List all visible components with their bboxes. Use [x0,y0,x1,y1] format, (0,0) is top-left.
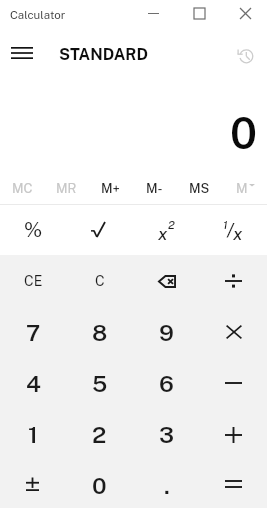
staticText: CE [24,273,43,289]
button[interactable]: 5 [66,358,133,409]
staticText: MS [189,181,210,196]
button[interactable]: C [66,255,133,307]
staticText: M- [146,181,163,196]
staticText: 5 [92,370,108,397]
staticText: % [24,218,43,242]
staticText: 0 [92,472,107,499]
button[interactable]: History [227,38,264,74]
staticText: 0 [230,108,258,159]
button[interactable]: 6 [133,358,200,409]
staticText: 6 [159,370,174,397]
staticText: Calculator [10,8,66,22]
button[interactable]: Squared [133,205,200,255]
staticText: STANDARD [59,45,148,64]
staticText: . [164,472,170,499]
button[interactable]: 0 [66,460,133,508]
button[interactable]: CE [0,255,66,307]
staticText: 2 [92,421,107,448]
button[interactable]: . [133,460,200,508]
button[interactable]: MR [44,174,88,202]
button[interactable]: 8 [66,307,133,358]
button[interactable]: Minus [200,358,267,409]
button[interactable]: 3 [133,409,200,460]
staticText: 1 [223,218,228,232]
button[interactable]: Multiply [200,307,267,358]
staticText: 2 [168,218,175,232]
button[interactable]: Backspace [133,255,200,307]
button[interactable]: 9 [133,307,200,358]
button[interactable]: Reciprocal [200,205,267,255]
button[interactable]: 2 [66,409,133,460]
staticText: M+ [101,181,120,196]
button[interactable]: Minimize [130,0,176,27]
staticText: MR [56,181,77,196]
button[interactable]: M- [132,174,177,202]
button[interactable]: 7 [0,307,66,358]
button[interactable]: Equals [200,460,267,508]
staticText: M [236,181,248,196]
button[interactable]: MS [177,174,222,202]
staticText: 7 [26,319,41,346]
staticText: / [227,219,234,241]
button[interactable]: Open Navigation [3,36,40,72]
staticText: 3 [159,421,175,448]
button[interactable]: STANDARD [53,38,153,70]
button[interactable]: Maximize [176,0,222,27]
button[interactable]: 1 [0,409,66,460]
button[interactable]: Divide [200,255,267,307]
staticText: x [158,224,168,244]
staticText: 8 [92,319,108,346]
button[interactable]: Square root [66,205,133,255]
button[interactable]: Close [222,0,267,27]
button[interactable]: MC [0,174,44,202]
button[interactable]: % [0,205,66,255]
button[interactable]: Memory options [222,174,267,202]
staticText: x [233,224,243,244]
button[interactable]: Plus [200,409,267,460]
button[interactable]: 4 [0,358,66,409]
staticText: 4 [26,370,41,397]
staticText: 9 [159,319,174,346]
staticText: MC [12,181,33,196]
button[interactable]: Positive negative [0,460,66,508]
staticText: 1 [28,421,38,448]
button[interactable]: M+ [88,174,132,202]
staticText: C [95,273,105,289]
